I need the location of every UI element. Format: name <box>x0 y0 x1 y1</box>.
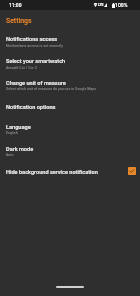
staticText: Notification options <box>6 104 56 111</box>
staticText: Hide background service notification <box>6 169 98 176</box>
button[interactable]: Dark mode <box>0 140 140 161</box>
staticText: Notifications access is set correctly <box>6 44 63 48</box>
staticText: Amazfit Cor / Cor 2 <box>6 66 37 70</box>
staticText: English <box>6 131 18 135</box>
button[interactable]: Hide background service notification <box>0 161 140 181</box>
staticText: Auto <box>6 153 14 157</box>
staticText: Select which unit of measure do you use … <box>6 87 97 91</box>
button[interactable]: Language <box>0 119 140 140</box>
button[interactable]: Notification options <box>0 99 140 119</box>
staticText: Notifications access <box>6 36 58 43</box>
button[interactable]: Settings <box>6 17 32 25</box>
staticText: Change unit of measure <box>6 80 66 87</box>
button[interactable]: Notifications access <box>0 30 140 53</box>
staticText: 100% <box>115 2 128 8</box>
other: Hide background service notification <box>128 167 136 175</box>
button[interactable]: Change unit of measure <box>0 75 140 97</box>
staticText: Dark mode <box>6 146 34 153</box>
staticText: 11:00 <box>9 2 22 8</box>
button[interactable]: Select your smartwatch <box>0 53 140 75</box>
staticText: LTE <box>98 3 104 7</box>
staticText: Select your smartwatch <box>6 58 66 65</box>
staticText: Language <box>6 124 31 131</box>
